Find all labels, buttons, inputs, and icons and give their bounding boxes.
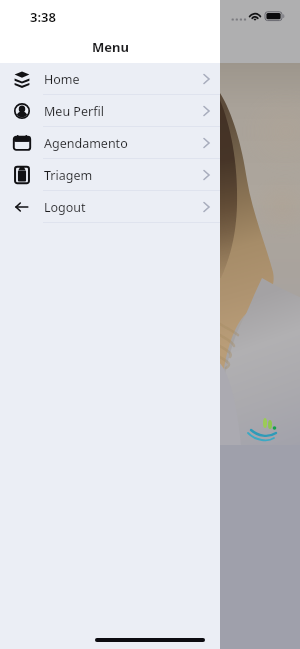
button[interactable]: Agendamento — [0, 127, 220, 159]
button[interactable]: Logout — [0, 191, 220, 223]
staticText: Meu Perfil — [44, 103, 104, 120]
button[interactable]: Meu Perfil — [0, 95, 220, 127]
button[interactable]: Triagem — [0, 159, 220, 191]
staticText: Agendamento — [44, 135, 128, 152]
staticText: Logout — [44, 199, 86, 216]
staticText: Triagem — [44, 167, 93, 184]
staticText: Menu — [92, 38, 129, 56]
staticText: Home — [44, 71, 80, 88]
staticText: 3:38 — [30, 8, 56, 26]
button[interactable]: Home — [0, 63, 220, 95]
